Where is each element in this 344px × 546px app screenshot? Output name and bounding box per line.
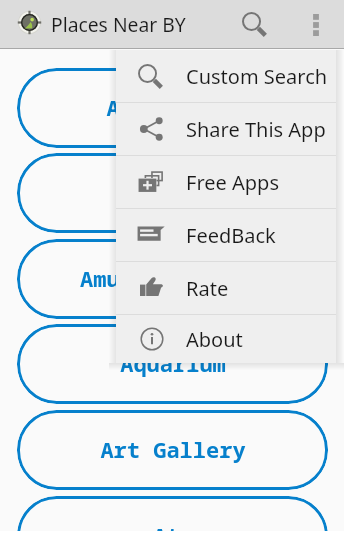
staticText: Airport	[126, 177, 219, 207]
button[interactable]: Art Gallery	[17, 410, 328, 490]
button[interactable]: Custom Search	[116, 50, 336, 102]
button[interactable]: Rate	[116, 262, 336, 314]
staticText: Accounting	[106, 92, 239, 122]
staticText: Amusement Park	[80, 263, 265, 293]
button[interactable]: More options	[296, 5, 336, 45]
staticText: Atm	[153, 520, 193, 531]
button[interactable]: Accounting	[17, 68, 328, 148]
button[interactable]: Atm	[17, 496, 328, 531]
staticText: Aquarium	[120, 348, 226, 378]
button[interactable]: About	[116, 315, 336, 363]
button[interactable]: FeedBack	[116, 209, 336, 261]
staticText: Art Gallery	[100, 434, 246, 464]
button[interactable]: Aquarium	[17, 324, 328, 404]
staticText: Free Apps	[186, 169, 279, 196]
staticText: FeedBack	[186, 222, 276, 249]
button[interactable]: Airport	[17, 153, 328, 233]
staticText: Places Near BY	[51, 11, 186, 37]
button[interactable]: Free Apps	[116, 156, 336, 208]
staticText: Rate	[186, 275, 229, 302]
staticText: Custom Search	[186, 63, 328, 90]
staticText: Share This App	[186, 116, 326, 143]
button[interactable]: Amusement Park	[17, 239, 328, 319]
staticText: About	[186, 326, 243, 353]
button[interactable]: Search	[235, 5, 275, 45]
button[interactable]: Share This App	[116, 103, 336, 155]
